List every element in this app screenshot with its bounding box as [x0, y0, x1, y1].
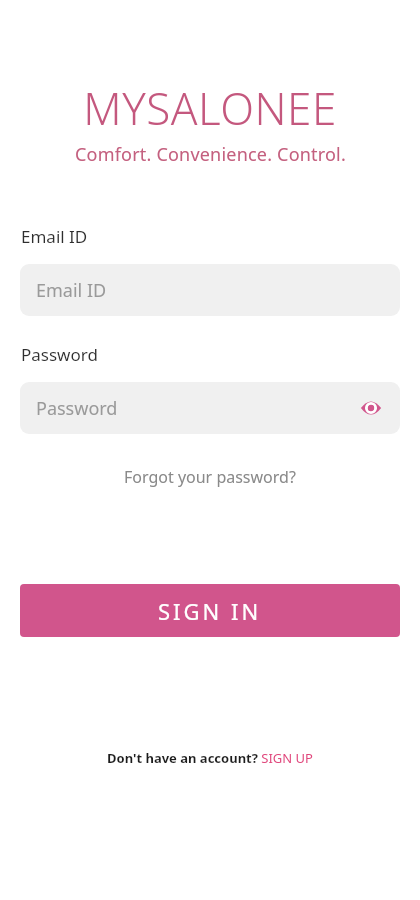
button[interactable]: Show password [356, 393, 386, 423]
staticText: Forgot your password? [124, 466, 296, 488]
staticText: Email ID [21, 225, 88, 248]
staticText: Don't have an account? SIGN UP [107, 749, 313, 767]
staticText: Password [36, 396, 118, 421]
button[interactable]: Email ID [20, 264, 400, 316]
staticText: MYSALONEE [83, 78, 337, 138]
staticText: SIGN IN [158, 596, 262, 626]
staticText: Comfort. Convenience. Control. [75, 142, 346, 167]
button[interactable]: Don't have an account? SIGN UP [101, 745, 319, 771]
button[interactable]: SIGN IN [20, 584, 400, 637]
staticText: Password [21, 343, 98, 366]
button[interactable]: Password [20, 382, 400, 434]
button[interactable]: Forgot your password? [116, 462, 304, 492]
staticText: Email ID [36, 278, 107, 303]
